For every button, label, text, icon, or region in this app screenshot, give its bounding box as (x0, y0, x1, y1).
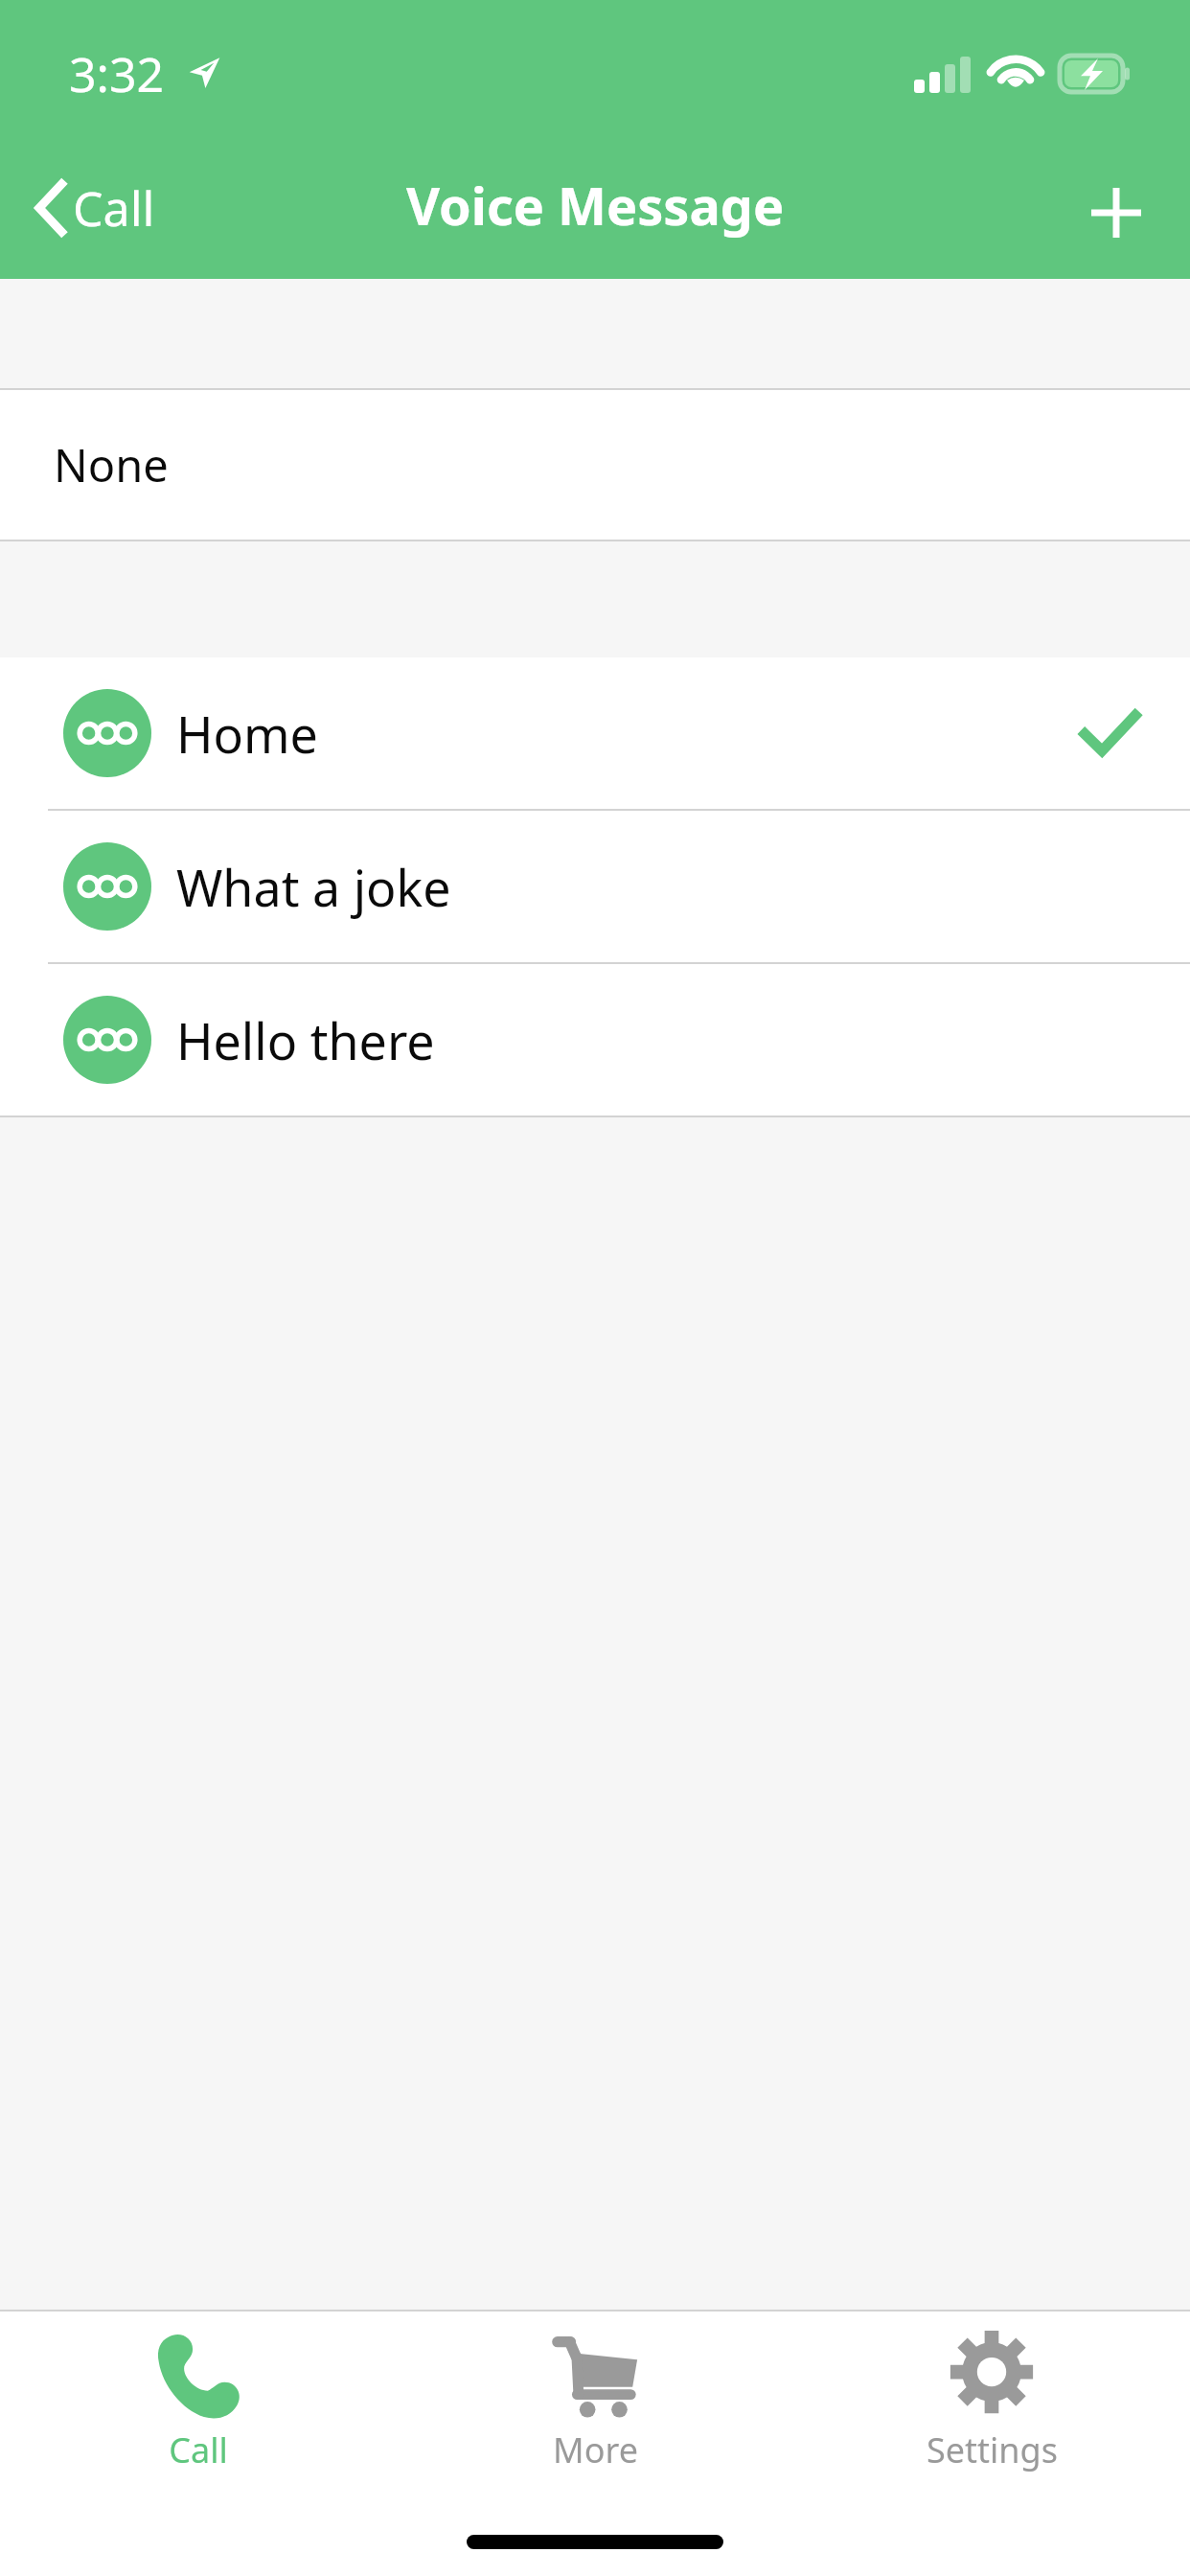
button[interactable]: More (397, 2311, 793, 2484)
staticText: More (553, 2426, 638, 2473)
other: More (548, 2329, 642, 2423)
button[interactable]: What a joke (0, 811, 1190, 962)
other: Settings (945, 2329, 1039, 2423)
button[interactable]: Call (29, 166, 163, 250)
button[interactable]: Call (0, 2311, 397, 2484)
button[interactable]: None (0, 390, 1190, 540)
staticText: Home (176, 700, 1083, 768)
staticText: What a joke (176, 853, 1136, 921)
button[interactable]: Home (0, 657, 1190, 809)
button[interactable]: Settings (793, 2311, 1190, 2484)
staticText: Call (169, 2426, 228, 2473)
other: Call (151, 2329, 245, 2423)
staticText: Call (73, 175, 155, 241)
staticText: 3:32 (69, 41, 165, 106)
staticText: Settings (927, 2426, 1058, 2473)
staticText: Hello there (176, 1006, 1136, 1074)
staticText: None (54, 434, 169, 495)
button[interactable]: Hello there (0, 964, 1190, 1115)
button[interactable]: Add voice message (1081, 177, 1152, 248)
staticText: Voice Message (406, 170, 785, 241)
